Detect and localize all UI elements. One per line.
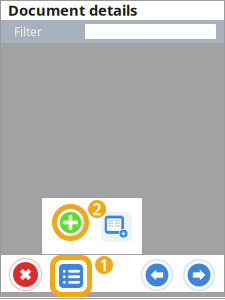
staticText: 1 [99, 254, 108, 276]
staticText: Filter [14, 23, 42, 39]
button[interactable]: New document [101, 212, 132, 242]
button[interactable]: Back [141, 259, 173, 291]
button[interactable]: Add [52, 204, 89, 241]
staticText: 2 [92, 198, 101, 220]
staticText: Document details [8, 0, 137, 20]
button[interactable]: Forward [183, 259, 215, 291]
button[interactable]: Cancel [9, 258, 42, 291]
button[interactable]: List [50, 255, 92, 297]
